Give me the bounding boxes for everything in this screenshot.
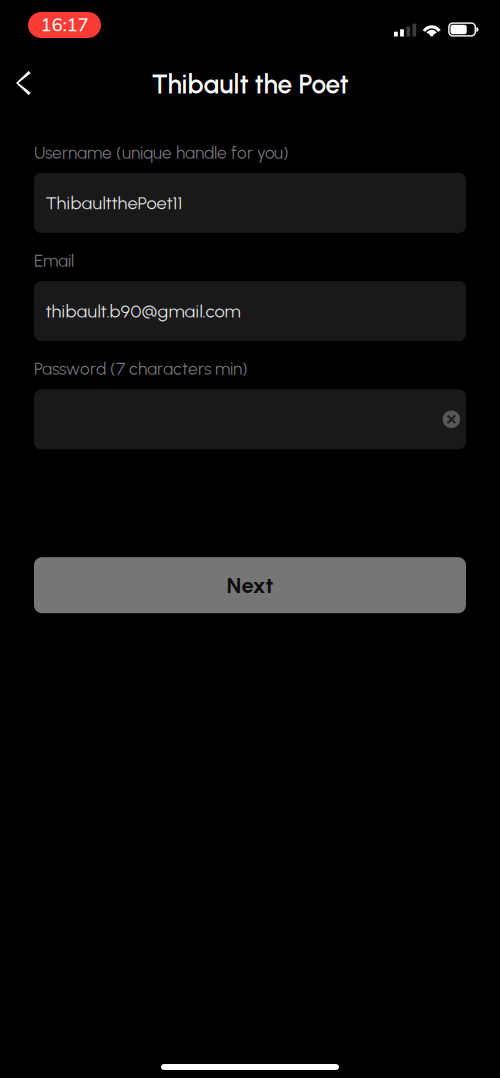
button[interactable]: Clear text	[438, 406, 465, 433]
staticText: ThibaultthePoet11	[46, 192, 183, 214]
staticText: Next	[226, 572, 273, 598]
button[interactable]: Back	[2, 61, 46, 105]
staticText: 16:17	[40, 12, 88, 38]
staticText: Thibault the Poet	[151, 69, 348, 100]
staticText: Password (7 characters min)	[34, 358, 248, 379]
button[interactable]: ThibaultthePoet11	[34, 173, 466, 233]
button[interactable]	[34, 389, 466, 449]
button[interactable]: Next	[34, 557, 466, 613]
staticText: thibault.b90@gmail.com	[46, 300, 241, 322]
staticText: Username (unique handle for you)	[34, 142, 289, 163]
button[interactable]: thibault.b90@gmail.com	[34, 281, 466, 341]
staticText: Email	[34, 250, 74, 271]
